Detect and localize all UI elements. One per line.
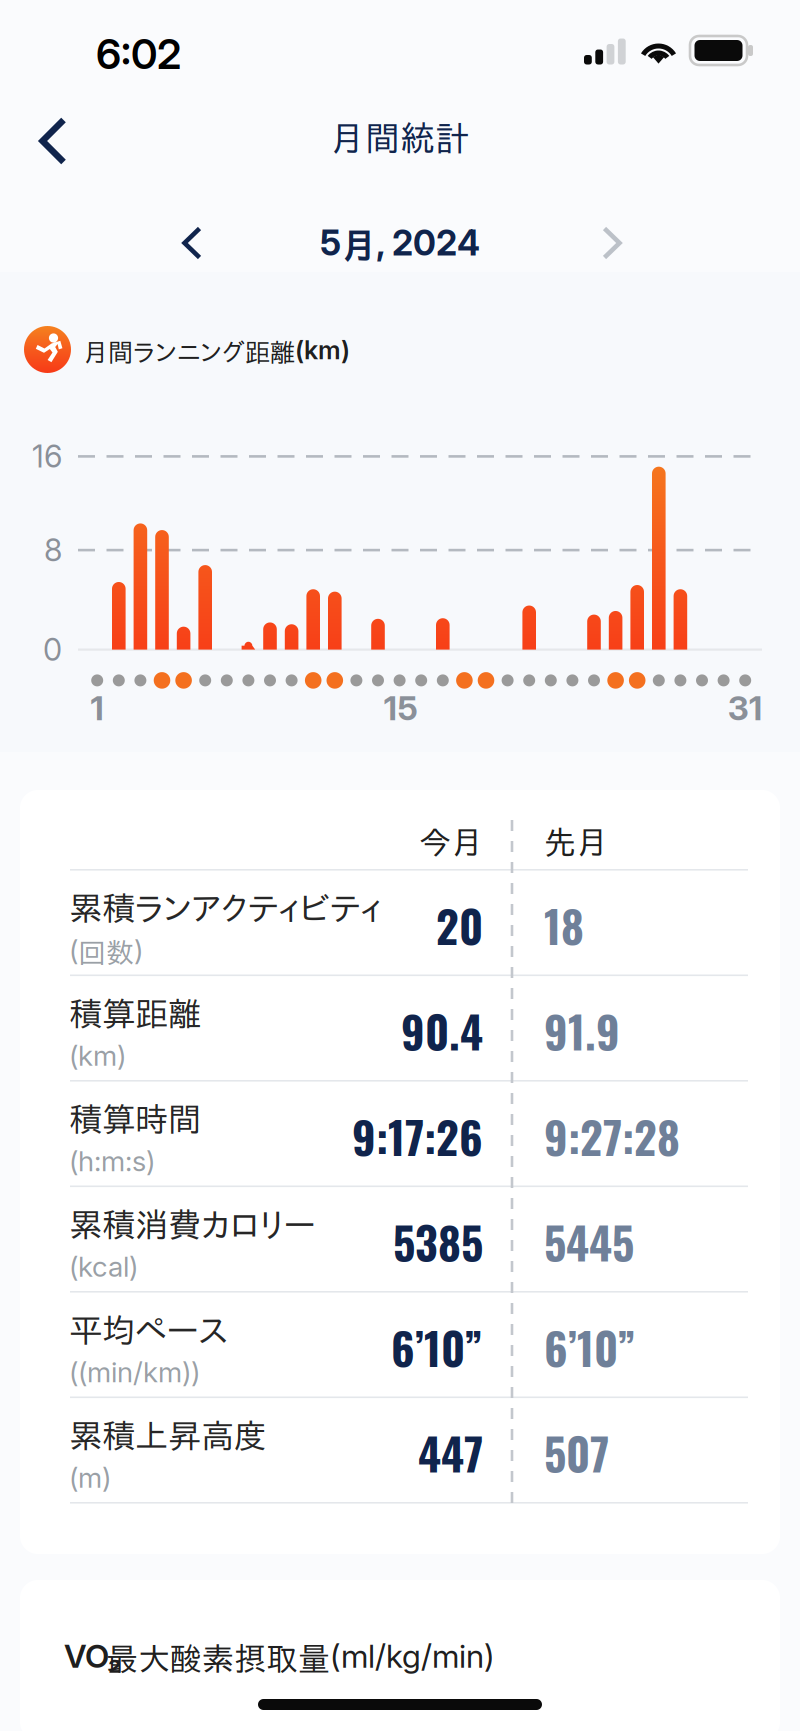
staticText: 15 [384, 688, 418, 728]
staticText: 507 [544, 1420, 609, 1485]
staticText: ((min/km)) [69, 1355, 200, 1389]
button[interactable]: Previous month [152, 203, 232, 283]
staticText: 累積ランアクティビティ [69, 891, 382, 925]
button[interactable]: Next month [572, 203, 652, 283]
staticText: 91.9 [544, 998, 620, 1063]
staticText: 先月 [544, 826, 608, 858]
staticText: 6:02 [96, 29, 181, 79]
staticText: 累積上昇高度 [69, 1419, 267, 1452]
staticText: 最大酸素摂取量(ml/kg/min) [106, 1637, 495, 1675]
staticText: 平均ペース [69, 1313, 228, 1347]
staticText: (kcal) [69, 1250, 138, 1283]
staticText: 31 [728, 688, 763, 728]
staticText: 1 [90, 688, 104, 728]
staticText: VO₂ [64, 1637, 121, 1675]
staticText: 8 [44, 531, 62, 569]
staticText: 0 [43, 631, 62, 668]
staticText: 6’10” [391, 1314, 483, 1380]
staticText: 447 [418, 1420, 483, 1485]
button[interactable]: Back [8, 96, 98, 186]
staticText: 9:27:28 [544, 1103, 680, 1169]
staticText: 5月, 2024 [320, 222, 480, 264]
staticText: 16 [32, 438, 62, 475]
staticText: 5385 [393, 1209, 483, 1274]
staticText: 月間統計 [330, 121, 470, 155]
staticText: 9:17:26 [352, 1103, 483, 1169]
staticText: (m) [69, 1461, 111, 1494]
staticText: 累積消費カロリー [69, 1208, 315, 1241]
staticText: (h:m:s) [69, 1144, 155, 1178]
staticText: 90.4 [401, 998, 483, 1063]
staticText: 積算時間 [69, 1102, 201, 1136]
staticText: 積算距離 [69, 997, 201, 1030]
staticText: 6’10” [544, 1314, 636, 1380]
staticText: (km) [69, 1039, 126, 1072]
staticText: (回数) [69, 933, 143, 967]
staticText: 18 [544, 892, 584, 958]
staticText: 5445 [544, 1209, 634, 1274]
staticText: 月間ランニング距離(km) [83, 335, 350, 365]
staticText: 今月 [419, 826, 483, 858]
staticText: 20 [436, 892, 483, 958]
